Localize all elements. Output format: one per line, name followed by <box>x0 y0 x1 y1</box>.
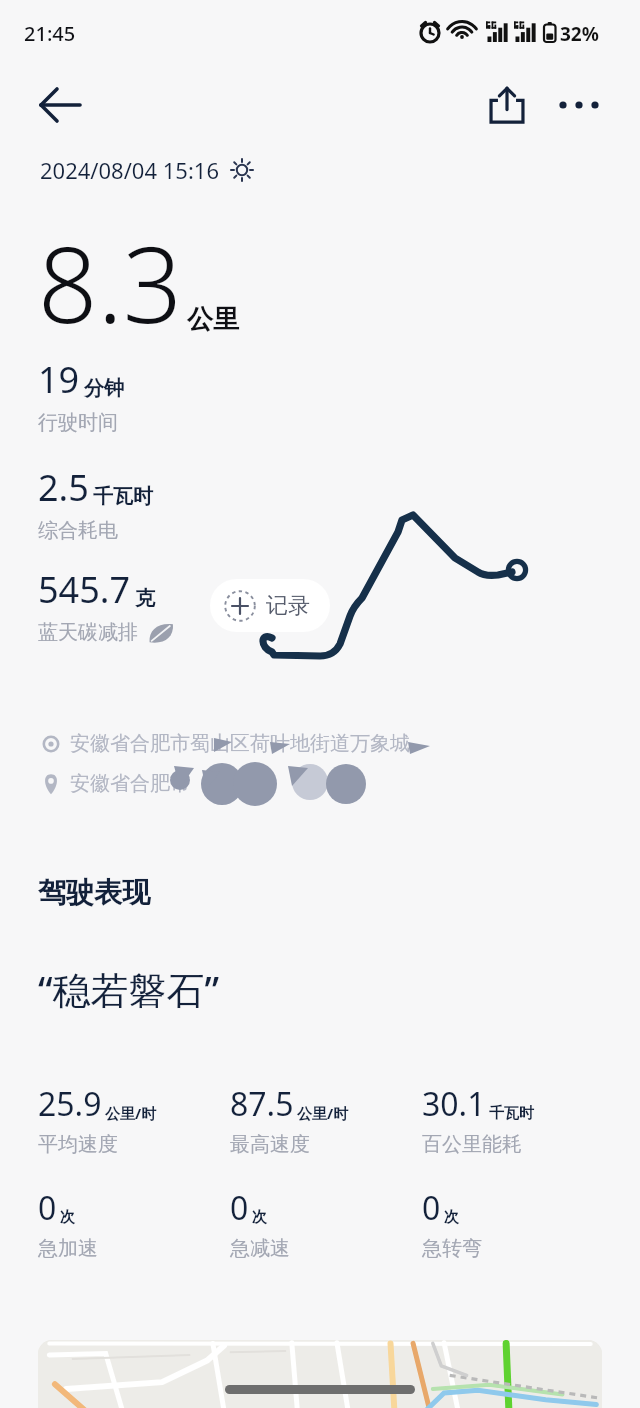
staticText: 安徽省合肥市蜀山区荷叶地街道万象城 <box>70 731 410 756</box>
staticText: 公里/时 <box>105 1103 157 1123</box>
button[interactable]: More options <box>550 76 608 134</box>
button[interactable] <box>38 1340 602 1408</box>
staticText: 次 <box>444 1208 459 1227</box>
staticText: 急加速 <box>38 1236 98 1261</box>
staticText: 545.7 <box>38 565 131 614</box>
staticText: 2.5 <box>38 463 89 512</box>
staticText: 记录 <box>266 592 310 620</box>
staticText: 公里/时 <box>297 1103 349 1123</box>
staticText: 32% <box>560 21 599 47</box>
staticText: 0 <box>422 1186 441 1230</box>
staticText: 千瓦时 <box>489 1104 534 1123</box>
staticText: 21:45 <box>24 20 76 47</box>
staticText: 驾驶表现 <box>38 875 150 910</box>
staticText: 克 <box>135 586 155 611</box>
staticText: 25.9 <box>38 1082 102 1126</box>
staticText: 百公里能耗 <box>422 1132 522 1157</box>
staticText: 安徽省合肥市 <box>70 771 190 796</box>
staticText: 行驶时间 <box>38 410 118 435</box>
staticText: 急转弯 <box>422 1236 482 1261</box>
staticText: 次 <box>252 1208 267 1227</box>
staticText: 87.5 <box>230 1082 294 1126</box>
staticText: 次 <box>60 1208 75 1227</box>
staticText: 公里 <box>187 303 239 336</box>
staticText: 千瓦时 <box>93 484 153 509</box>
staticText: 平均速度 <box>38 1132 118 1157</box>
staticText: 0 <box>230 1186 249 1230</box>
button[interactable]: Share <box>478 76 536 134</box>
staticText: 综合耗电 <box>38 518 118 543</box>
staticText: 19 <box>38 355 80 404</box>
staticText: 2024/08/04 15:16 <box>40 155 219 185</box>
button[interactable]: Back <box>24 76 96 134</box>
staticText: 分钟 <box>84 376 124 401</box>
staticText: 0 <box>38 1186 57 1230</box>
staticText: 30.1 <box>422 1082 486 1126</box>
staticText: “稳若磐石” <box>38 963 220 1015</box>
staticText: 8.3 <box>38 212 183 354</box>
staticText: 最高速度 <box>230 1132 310 1157</box>
button[interactable]: 记录 <box>210 579 330 632</box>
staticText: 蓝天碳减排 <box>38 620 138 645</box>
staticText: 急减速 <box>230 1236 290 1261</box>
